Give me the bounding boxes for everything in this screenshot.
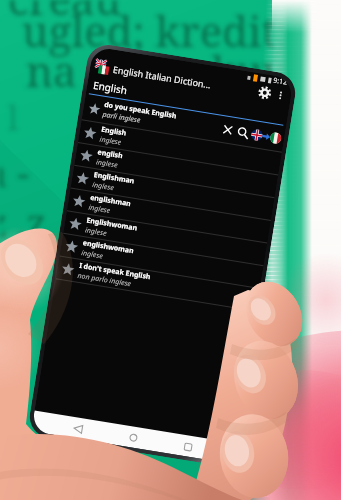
button[interactable]: Bookmark <box>87 101 101 116</box>
button[interactable]: Home <box>122 426 145 449</box>
staticText: inglese <box>95 157 118 171</box>
button[interactable]: Englishman <box>71 166 274 220</box>
button[interactable]: Swap languages <box>251 129 282 144</box>
staticText: Englishwoman <box>86 215 139 234</box>
staticText: z .z <box>0 196 47 248</box>
staticText: do you speak English <box>103 100 177 121</box>
button[interactable]: Search <box>233 123 252 141</box>
staticText: englishwoman <box>82 238 135 256</box>
staticText: non parlo inglese <box>77 271 132 289</box>
staticText: c <box>296 0 318 56</box>
staticText: Englishman <box>93 170 135 186</box>
staticText: nyp <box>286 34 341 88</box>
button[interactable]: Back <box>67 417 90 440</box>
button[interactable]: Recents <box>176 435 199 458</box>
staticText: a - <box>0 146 30 198</box>
staticText: english <box>97 147 124 161</box>
staticText: parli inglese <box>102 110 141 126</box>
button[interactable]: English <box>78 120 282 174</box>
staticText: English Italian Diction... <box>112 63 212 90</box>
staticText: englishman <box>89 193 131 209</box>
button[interactable]: englishwoman <box>60 234 263 288</box>
staticText: inglese <box>88 203 111 216</box>
staticText: inglese <box>84 225 107 239</box>
button[interactable]: More options <box>273 88 288 103</box>
staticText: inglese <box>91 180 115 193</box>
button[interactable]: englishman <box>67 188 271 243</box>
button[interactable]: I don't speak English <box>56 256 260 311</box>
button[interactable]: Settings <box>254 83 275 103</box>
staticText: creau <box>8 0 122 27</box>
staticText: l <box>8 96 18 140</box>
staticText: na eie kuy <box>26 42 287 99</box>
staticText: English <box>92 78 129 97</box>
staticText: oba <box>290 76 341 128</box>
button[interactable]: Clear <box>220 122 236 138</box>
staticText: inglese <box>99 134 122 148</box>
button[interactable]: english <box>74 143 278 197</box>
staticText: tuc <box>288 122 341 171</box>
staticText: inglese <box>80 248 104 261</box>
staticText: 9:12 <box>272 75 288 88</box>
button[interactable]: Englishwoman <box>63 211 267 265</box>
staticText: to <box>300 192 327 230</box>
staticText: English <box>100 125 128 139</box>
staticText: ugled; kredit; c <box>22 2 320 59</box>
staticText: I don't speak English <box>78 261 152 282</box>
